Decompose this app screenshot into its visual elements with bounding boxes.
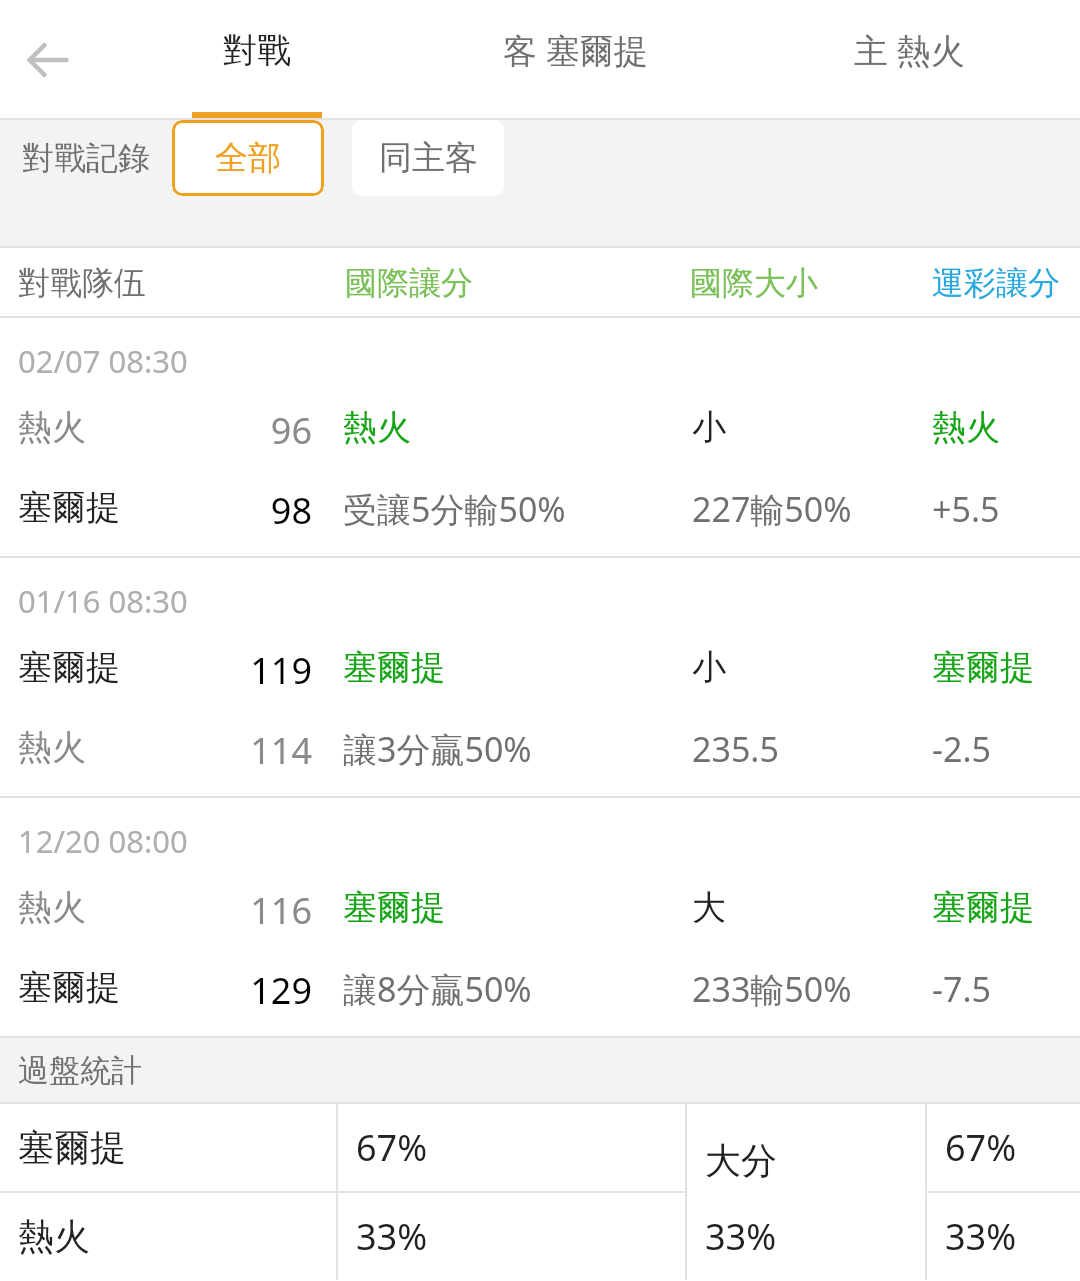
staticText: 對戰記錄 bbox=[22, 138, 150, 178]
staticText: 233輸50% bbox=[692, 966, 852, 1012]
staticText: 熱火 bbox=[18, 726, 86, 769]
button[interactable]: 對戰 bbox=[110, 0, 403, 120]
staticText: 96 bbox=[140, 406, 312, 455]
staticText: 67% bbox=[356, 1123, 428, 1172]
staticText: 02/07 08:30 bbox=[18, 340, 188, 382]
staticText: 塞爾提 bbox=[18, 966, 120, 1009]
staticText: 同主客 bbox=[379, 137, 478, 179]
staticText: 119 bbox=[140, 646, 312, 695]
staticText: 運彩讓分 bbox=[932, 263, 1060, 303]
staticText: 塞爾提 bbox=[18, 646, 120, 689]
staticText: 熱火 bbox=[932, 406, 1000, 449]
button[interactable]: 01/16 08:30 bbox=[0, 558, 1080, 796]
staticText: 114 bbox=[140, 726, 312, 775]
staticText: 塞爾提 bbox=[343, 886, 445, 929]
staticText: 小 bbox=[692, 646, 726, 689]
button[interactable]: 12/20 08:00 bbox=[0, 798, 1080, 1036]
staticText: 大 bbox=[692, 886, 726, 929]
button[interactable]: 主 熱火 bbox=[748, 0, 1070, 120]
staticText: 33% bbox=[705, 1212, 777, 1261]
staticText: 塞爾提 bbox=[18, 486, 120, 529]
staticText: 129 bbox=[140, 966, 312, 1015]
staticText: 過盤統計 bbox=[18, 1051, 142, 1090]
staticText: 116 bbox=[140, 886, 312, 935]
staticText: 對戰 bbox=[223, 29, 291, 72]
staticText: +5.5 bbox=[932, 486, 1000, 532]
staticText: 33% bbox=[945, 1212, 1017, 1261]
staticText: 全部 bbox=[215, 137, 281, 179]
button[interactable]: 客 塞爾提 bbox=[403, 0, 748, 120]
button[interactable]: 全部 bbox=[172, 120, 324, 196]
staticText: -2.5 bbox=[932, 726, 991, 772]
button[interactable]: 同主客 bbox=[352, 120, 504, 196]
staticText: 12/20 08:00 bbox=[18, 820, 188, 862]
staticText: 客 塞爾提 bbox=[503, 27, 648, 73]
staticText: 對戰隊伍 bbox=[18, 263, 146, 303]
staticText: 小 bbox=[692, 406, 726, 449]
staticText: 67% bbox=[945, 1123, 1017, 1172]
staticText: 235.5 bbox=[692, 726, 779, 772]
staticText: 熱火 bbox=[18, 886, 86, 929]
staticText: 讓3分贏50% bbox=[343, 726, 532, 772]
staticText: 01/16 08:30 bbox=[18, 580, 188, 622]
staticText: 國際讓分 bbox=[345, 263, 473, 303]
staticText: 熱火 bbox=[343, 406, 411, 449]
staticText: 主 熱火 bbox=[854, 27, 965, 73]
button[interactable]: Back bbox=[8, 20, 88, 100]
staticText: 33% bbox=[356, 1212, 428, 1261]
staticText: 熱火 bbox=[18, 1214, 90, 1259]
staticText: -7.5 bbox=[932, 966, 991, 1012]
staticText: 227輸50% bbox=[692, 486, 852, 532]
staticText: 塞爾提 bbox=[932, 886, 1034, 929]
staticText: 讓8分贏50% bbox=[343, 966, 532, 1012]
staticText: 塞爾提 bbox=[343, 646, 445, 689]
staticText: 塞爾提 bbox=[18, 1125, 126, 1170]
staticText: 熱火 bbox=[18, 406, 86, 449]
staticText: 大分 bbox=[705, 1138, 777, 1183]
staticText: 國際大小 bbox=[690, 263, 818, 303]
staticText: 受讓5分輸50% bbox=[343, 486, 566, 532]
button[interactable]: 02/07 08:30 bbox=[0, 318, 1080, 556]
staticText: 塞爾提 bbox=[932, 646, 1034, 689]
staticText: 98 bbox=[140, 486, 312, 535]
